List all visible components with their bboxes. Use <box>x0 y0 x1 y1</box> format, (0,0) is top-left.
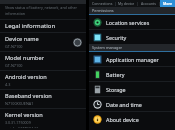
staticText: se.infra@SEP604 #1 <box>5 126 39 128</box>
button[interactable]: Baseband version <box>0 90 86 108</box>
button[interactable]: Kernel version <box>0 109 86 130</box>
staticText: Legal information <box>5 22 56 30</box>
button[interactable]: Device name <box>0 33 86 51</box>
staticText: Connections <box>92 1 113 6</box>
button[interactable]: My device <box>116 0 137 7</box>
staticText: Storage <box>106 86 126 93</box>
button[interactable]: Battery <box>89 67 175 81</box>
button[interactable]: Edit device name <box>73 38 82 47</box>
staticText: Device name <box>5 35 39 43</box>
staticText: Location services <box>106 19 150 26</box>
staticText: About device <box>106 116 139 123</box>
staticText: Accounts <box>141 1 156 6</box>
staticText: Battery <box>106 71 125 78</box>
button[interactable]: Legal information <box>0 20 86 32</box>
staticText: information <box>5 11 26 16</box>
staticText: Kernel version <box>5 111 43 119</box>
staticText: Model number <box>5 54 44 62</box>
button[interactable]: Android version <box>0 71 86 89</box>
button[interactable]: Accounts <box>138 0 159 7</box>
staticText: Security <box>106 34 127 41</box>
staticText: Baseband version <box>5 92 52 100</box>
staticText: Android version <box>5 73 47 81</box>
button[interactable]: Security <box>89 30 175 44</box>
staticText: GT-N7100 <box>5 63 23 68</box>
button[interactable]: Connections <box>89 0 115 7</box>
staticText: 4.3 <box>5 82 11 87</box>
staticText: N7100XXUENA1 <box>5 101 34 106</box>
button[interactable]: About device <box>89 112 175 126</box>
button[interactable]: Storage <box>89 82 175 96</box>
button[interactable]: Model number <box>0 52 86 70</box>
button[interactable]: More <box>160 0 175 7</box>
staticText: GT-N7100 <box>5 44 23 49</box>
staticText: System manager <box>92 45 123 50</box>
staticText: My device <box>118 1 135 6</box>
staticText: 3.0.31-1750009 <box>5 120 31 125</box>
staticText: Permissions <box>92 8 114 13</box>
button[interactable]: Date and time <box>89 97 175 111</box>
staticText: More <box>163 1 173 6</box>
button[interactable]: Location services <box>89 15 175 29</box>
staticText: Application manager <box>106 56 159 63</box>
staticText: Show status of battery, network, and oth… <box>5 5 77 10</box>
staticText: Date and time <box>106 101 142 108</box>
button[interactable]: Show status of battery, network, and oth… <box>0 4 86 19</box>
button[interactable]: Application manager <box>89 52 175 66</box>
